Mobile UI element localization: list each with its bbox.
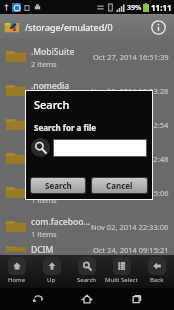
staticText: Oct 27, 2014 16:51:39 [93, 52, 169, 62]
staticText: Nov 02, 2014 19:32:54 [91, 120, 169, 130]
staticText: /storage/emulated/0 [25, 21, 113, 33]
staticText: Multi Select [105, 276, 138, 284]
staticText: 0 items [31, 127, 57, 137]
staticText: 1 items [31, 93, 57, 103]
button[interactable]: com.facebook.katana [0, 210, 174, 244]
staticText: 1 items [31, 195, 57, 205]
button[interactable]: Multi Select [104, 255, 139, 288]
staticText: Up [47, 276, 56, 284]
button[interactable]: Search [69, 255, 104, 288]
button[interactable]: .MobiSuite [0, 40, 174, 74]
button[interactable]: Back [139, 255, 174, 288]
button[interactable]: Recents [125, 288, 149, 310]
staticText: Nov 08, 2014 11:53:28 [91, 86, 169, 96]
staticText: Home [8, 276, 26, 284]
staticText: Cancel [106, 180, 133, 191]
staticText: Search [77, 276, 96, 284]
staticText: Jan 02, 1970 03:32:48 [94, 154, 169, 164]
staticText: .MobiSuite [31, 46, 75, 58]
button[interactable]: Cancel [92, 178, 147, 193]
button[interactable]: .nomedia [0, 74, 174, 108]
button[interactable]: Back [26, 288, 50, 310]
staticText: Search for a file [34, 122, 97, 133]
staticText: 1 items [31, 229, 57, 239]
button[interactable]: Home [75, 288, 99, 310]
button[interactable]: Info [148, 17, 168, 37]
staticText: 39% [127, 3, 142, 13]
staticText: Android [31, 148, 64, 160]
staticText: bluetooth [31, 182, 72, 194]
staticText: Back [150, 276, 164, 284]
staticText: Oct 31, 2014 14:35:06 [93, 188, 169, 198]
button[interactable]: Search icon [31, 138, 50, 157]
staticText: 11:11 [151, 2, 172, 13]
button[interactable]: Alarms [0, 108, 174, 142]
button[interactable]: bluetooth [0, 176, 174, 210]
button[interactable]: Up [34, 255, 69, 288]
staticText: com.facebook.katana [31, 216, 91, 228]
staticText: .nomedia [31, 80, 70, 92]
staticText: Alarms [31, 114, 60, 126]
button[interactable]: DCIM [0, 244, 174, 255]
button[interactable]: Search [31, 178, 85, 193]
staticText: Oct 24, 2014 09:15:21 [93, 245, 169, 255]
staticText: Search [34, 97, 70, 112]
button[interactable]: Android [0, 142, 174, 176]
staticText: Nov 02, 2014 22:33:06 [91, 222, 169, 232]
staticText: Search [45, 180, 72, 191]
button[interactable]: Home [0, 255, 34, 288]
staticText: 2 items [31, 59, 57, 69]
staticText: DCIM [31, 244, 54, 255]
